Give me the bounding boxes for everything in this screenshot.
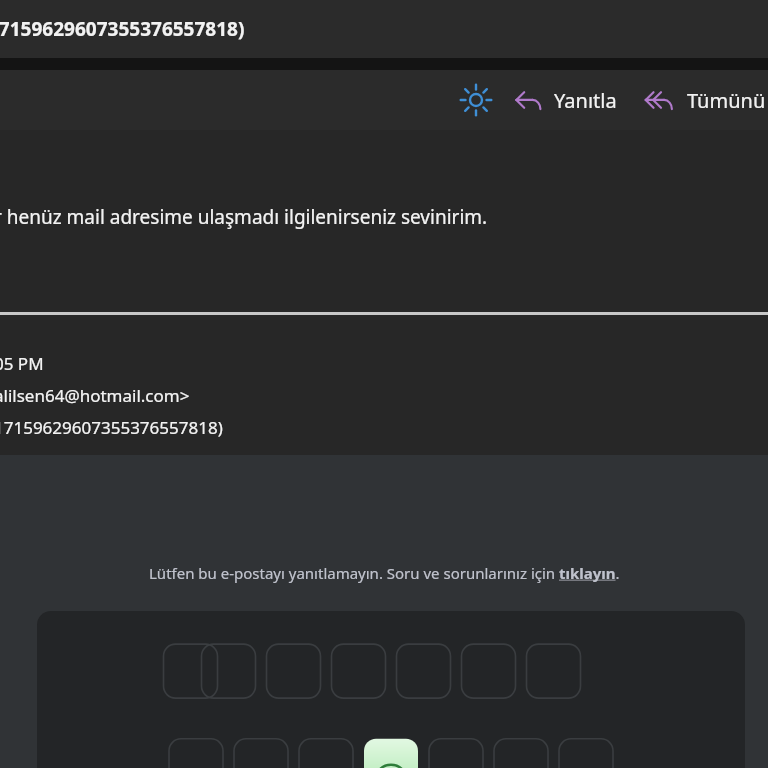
staticText: Tümünü (687, 87, 766, 114)
staticText: Yanıtla (554, 87, 617, 114)
staticText: alilsen64@hotmail.com> (0, 384, 190, 407)
button[interactable]: Tümünü (641, 87, 768, 114)
button[interactable]: Lütfen bu e-postayı yanıtlamayın. Soru v… (149, 563, 620, 583)
staticText: 17159629607355376557818) (0, 416, 223, 439)
button[interactable]: Yanıtla (512, 87, 619, 114)
button[interactable]: Parlaklık (454, 78, 498, 122)
staticText: 05 PM (0, 352, 44, 375)
staticText: r henüz mail adresime ulaşmadı ilgilenir… (0, 204, 488, 230)
button[interactable] (37, 611, 745, 768)
staticText: 17159629607355376557818) (0, 16, 245, 42)
